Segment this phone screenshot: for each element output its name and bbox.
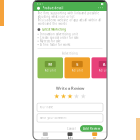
button[interactable]: Me <box>82 132 107 140</box>
staticText: Ad unit <box>72 69 83 72</box>
staticText: A <box>103 61 106 67</box>
staticText: The firm, supporting with links and poss… <box>37 12 99 15</box>
staticText: ▮▮▯ <box>100 2 103 5</box>
staticText: Ad unit <box>45 69 56 72</box>
staticText: Ads <box>67 136 72 140</box>
button[interactable]: Your name <box>37 103 103 111</box>
staticText: ★ <box>74 92 80 100</box>
button[interactable]: More options <box>97 6 103 10</box>
button[interactable]: Ads <box>58 132 82 140</box>
button[interactable]: Rate <box>80 92 86 100</box>
staticText: This is a demo website of app ads all wi… <box>37 18 101 22</box>
button[interactable]: Menu <box>36 6 40 10</box>
staticText: Your name <box>39 106 53 109</box>
staticText: ★ <box>67 92 73 100</box>
button[interactable]: Add Review <box>80 125 103 132</box>
staticText: My tests for sale <box>40 39 61 43</box>
button[interactable]: A <box>91 57 117 78</box>
button[interactable]: Rate <box>67 92 73 100</box>
staticText: 9:41 <box>36 2 43 5</box>
staticText: A fine factor for works <box>40 43 70 46</box>
button[interactable]: E <box>64 57 90 78</box>
staticText: Me <box>93 136 97 140</box>
staticText: Create special order for sale <box>40 36 79 39</box>
staticText: ★ <box>80 92 86 100</box>
staticText: M <box>48 61 52 67</box>
staticText: adjusting what is on or lot <box>37 15 74 18</box>
staticText: Write a Review <box>56 85 84 91</box>
button[interactable]: Rate <box>54 92 60 100</box>
button[interactable]: Rate <box>74 92 80 100</box>
button[interactable]: Rate <box>60 92 66 100</box>
staticText: Write your comment <box>39 116 66 120</box>
staticText: Product detail <box>42 6 63 10</box>
staticText: Home <box>41 136 49 140</box>
staticText: Advertising <box>62 52 78 55</box>
staticText: words and the words <box>37 22 66 25</box>
button[interactable]: Write your comment <box>37 114 103 122</box>
staticText: • • • <box>98 6 103 10</box>
staticText: ★ <box>54 92 60 100</box>
button[interactable]: Home <box>33 132 58 140</box>
button[interactable]: Cancel <box>66 127 77 130</box>
button[interactable]: M <box>37 57 63 78</box>
staticText: Innovation advertising unit <box>40 32 78 36</box>
staticText: Ad unit <box>99 69 110 72</box>
staticText: Latest Marketing <box>42 28 66 31</box>
staticText: ★ <box>60 92 66 100</box>
staticText: Cancel <box>67 127 76 130</box>
staticText: Add Review <box>83 127 100 130</box>
staticText: E <box>76 61 78 67</box>
